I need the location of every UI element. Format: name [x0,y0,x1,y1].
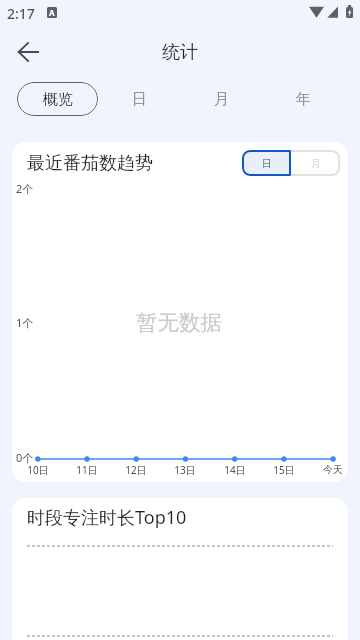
staticText: 11日 [76,463,98,477]
staticText: 最近番茄数趋势 [27,152,153,175]
staticText: 统计 [162,41,198,64]
staticText: 2个 [16,181,34,196]
staticText: 1个 [16,315,34,330]
staticText: 0个 [16,450,34,465]
button[interactable]: 月 [180,82,262,116]
staticText: A [49,7,55,18]
staticText: 月 [311,157,321,170]
staticText: 概览 [43,90,73,109]
button[interactable]: 概览 [17,82,98,116]
staticText: 2:17 [7,4,35,23]
button[interactable]: 日 [242,150,291,176]
button[interactable]: 日 [98,82,180,116]
staticText: 10日 [27,463,49,477]
staticText: 日 [262,157,272,170]
staticText: 时段专注时长Top10 [27,505,187,530]
staticText: 今天 [323,463,343,476]
staticText: 12日 [125,463,147,477]
staticText: 月 [214,90,229,109]
staticText: 13日 [174,463,196,477]
button[interactable]: 年 [262,82,344,116]
staticText: 年 [296,90,311,109]
button[interactable]: 月 [291,150,340,176]
staticText: 15日 [273,463,295,477]
staticText: 日 [132,90,147,109]
staticText: 14日 [224,463,246,477]
button[interactable]: Back [7,31,49,73]
staticText: 暂无数据 [136,309,222,336]
